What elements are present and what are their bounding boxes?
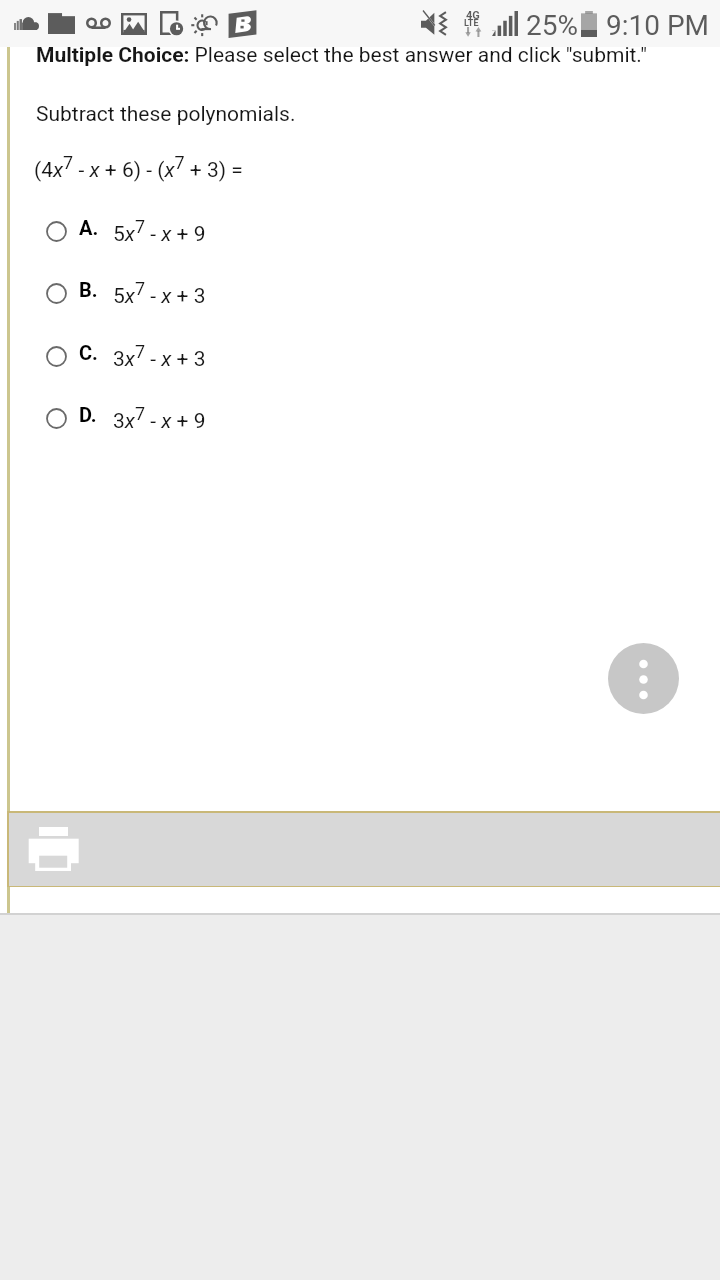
staticText: 4G <box>466 9 480 22</box>
staticText: 5x7 - x + 9 <box>113 216 206 246</box>
staticText: A. <box>79 216 99 239</box>
staticText: C. <box>79 341 98 364</box>
staticText: D. <box>79 403 97 426</box>
staticText: 3x7 - x + 9 <box>113 403 206 433</box>
staticText: 3x7 - x + 3 <box>113 341 206 371</box>
staticText: Subtract these polynomials. <box>36 102 296 127</box>
staticText: 5x7 - x + 3 <box>113 278 206 308</box>
staticText: LTE <box>464 18 479 29</box>
staticText: 25% <box>526 9 578 42</box>
button[interactable]: B. <box>0 269 720 317</box>
button[interactable]: More options <box>608 643 679 714</box>
button[interactable]: Print <box>7 811 720 887</box>
button[interactable]: D. <box>0 394 720 442</box>
staticText: 9:10 PM <box>606 9 710 42</box>
staticText: Multiple Choice: Please select the best … <box>36 43 647 68</box>
staticText: B. <box>79 278 98 301</box>
staticText: (4x7 - x + 6) - (x7 + 3) = <box>34 152 243 182</box>
button[interactable]: A. <box>0 207 720 255</box>
button[interactable]: C. <box>0 332 720 380</box>
